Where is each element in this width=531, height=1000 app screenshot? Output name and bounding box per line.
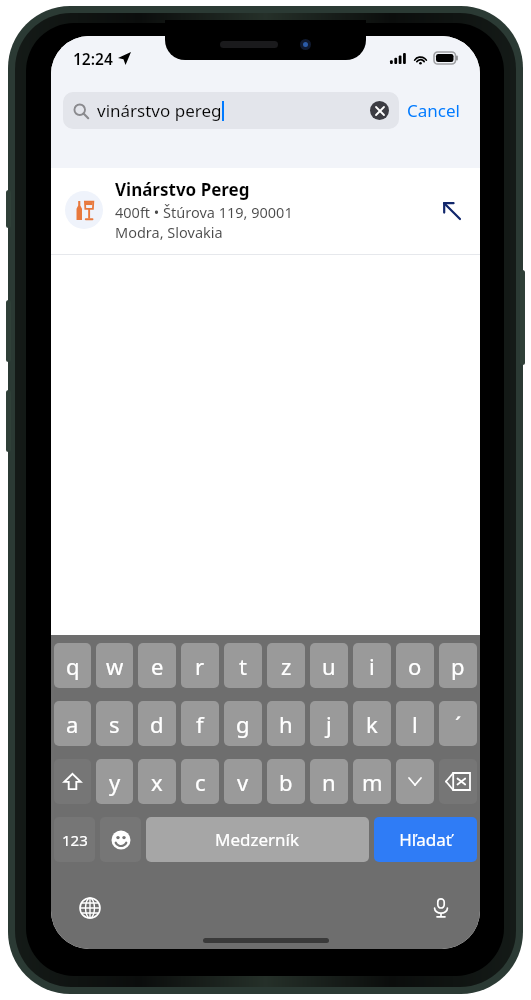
staticText: f (196, 709, 204, 739)
button[interactable]: Backspace (439, 759, 477, 804)
staticText: p (451, 651, 465, 681)
button[interactable]: Change keyboard (73, 891, 107, 925)
button[interactable]: x (138, 759, 176, 804)
staticText: s (109, 709, 120, 739)
staticText: j (326, 709, 332, 739)
button[interactable]: i (353, 643, 391, 688)
button[interactable]: ´ (439, 701, 477, 746)
staticText: a (66, 709, 79, 739)
button[interactable]: vinárstvo pereg (63, 92, 399, 129)
staticText: u (322, 651, 336, 681)
staticText: m (362, 767, 383, 797)
button[interactable]: Shift (54, 759, 91, 804)
staticText: vinárstvo pereg (97, 99, 222, 122)
staticText: i (369, 651, 375, 681)
staticText: z (281, 651, 292, 681)
button[interactable]: e (138, 643, 176, 688)
button[interactable]: g (224, 701, 262, 746)
button[interactable]: y (96, 759, 133, 804)
button[interactable]: d (138, 701, 176, 746)
button[interactable]: p (439, 643, 477, 688)
staticText: k (366, 709, 378, 739)
staticText: 400ft • Štúrova 119, 90001 (115, 202, 293, 222)
staticText: Medzerník (215, 828, 300, 851)
button[interactable]: Space (146, 817, 369, 862)
button[interactable]: Emoji (100, 817, 141, 862)
staticText: q (66, 651, 80, 681)
button[interactable]: Clear text (370, 101, 389, 120)
button[interactable]: z (267, 643, 305, 688)
button[interactable]: k (353, 701, 391, 746)
staticText: r (195, 651, 205, 681)
staticText: n (322, 767, 336, 797)
staticText: e (151, 651, 164, 681)
button[interactable]: Numbers (54, 817, 95, 862)
staticText: y (109, 767, 121, 797)
button[interactable]: h (267, 701, 305, 746)
staticText: h (279, 709, 293, 739)
staticText: Cancel (407, 99, 460, 122)
staticText: w (106, 651, 124, 681)
button[interactable]: q (54, 643, 91, 688)
button[interactable]: a (54, 701, 91, 746)
staticText: d (150, 709, 164, 739)
button[interactable]: r (181, 643, 219, 688)
button[interactable]: v (224, 759, 262, 804)
button[interactable]: c (181, 759, 219, 804)
staticText: Modra, Slovakia (115, 222, 223, 242)
button[interactable]: Fill in search (436, 195, 466, 225)
staticText: Vinárstvo Pereg (115, 178, 250, 201)
button[interactable]: Vinárstvo Pereg (51, 168, 480, 254)
button[interactable]: w (96, 643, 133, 688)
button[interactable]: Search (374, 817, 477, 862)
staticText: o (408, 651, 422, 681)
staticText: x (151, 767, 163, 797)
button[interactable]: s (96, 701, 133, 746)
button[interactable]: n (310, 759, 348, 804)
staticText: g (236, 709, 250, 739)
button[interactable]: f (181, 701, 219, 746)
button[interactable]: Diacritics (396, 759, 434, 804)
button[interactable]: t (224, 643, 262, 688)
button[interactable]: b (267, 759, 305, 804)
staticText: l (412, 709, 418, 739)
button[interactable]: Dictate (424, 891, 458, 925)
button[interactable]: o (396, 643, 434, 688)
button[interactable]: m (353, 759, 391, 804)
staticText: 123 (62, 830, 88, 850)
staticText: v (237, 767, 249, 797)
button[interactable]: u (310, 643, 348, 688)
button[interactable]: Cancel (399, 93, 468, 128)
staticText: ´ (455, 709, 462, 739)
staticText: b (279, 767, 293, 797)
staticText: 12:24 (73, 48, 113, 69)
button[interactable]: l (396, 701, 434, 746)
staticText: t (239, 651, 247, 681)
staticText: c (195, 767, 206, 797)
staticText: Hľadať (399, 828, 452, 851)
button[interactable]: j (310, 701, 348, 746)
